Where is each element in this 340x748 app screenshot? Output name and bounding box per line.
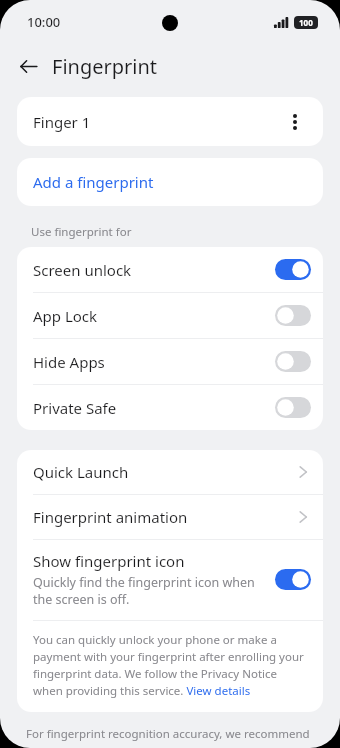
staticText: App Lock [33,306,275,326]
button[interactable]: App Lock [17,293,323,338]
staticText: Add a fingerprint [33,172,154,192]
button[interactable]: Add a fingerprint [17,158,323,206]
staticText: Hide Apps [33,352,275,372]
staticText: Show fingerprint icon [33,551,185,571]
staticText: Private Safe [33,398,275,418]
staticText: You can quickly unlock your phone or mak… [33,632,307,698]
staticText: Screen unlock [33,260,275,280]
staticText: Finger 1 [33,112,281,132]
staticText: 100 [299,17,313,28]
button[interactable]: Private Safe [17,385,323,430]
button[interactable]: Fingerprint animation [17,495,323,539]
staticText: Quick Launch [33,462,299,482]
button[interactable]: Back [12,50,44,82]
staticText: Fingerprint [52,53,158,80]
staticText: 10:00 [27,13,61,31]
staticText: Use fingerprint for [31,224,132,240]
button[interactable]: Hide Apps [17,339,323,384]
staticText: For fingerprint recognition accuracy, we… [26,726,310,742]
button[interactable]: Quick Launch [17,450,323,494]
button[interactable]: Screen unlock [17,247,323,292]
button[interactable]: Show fingerprint icon [17,540,323,620]
staticText: Fingerprint animation [33,507,299,527]
button[interactable]: Finger 1 [17,97,323,146]
button[interactable]: More options [281,108,309,136]
staticText: Quickly find the fingerprint icon when t… [33,574,265,608]
